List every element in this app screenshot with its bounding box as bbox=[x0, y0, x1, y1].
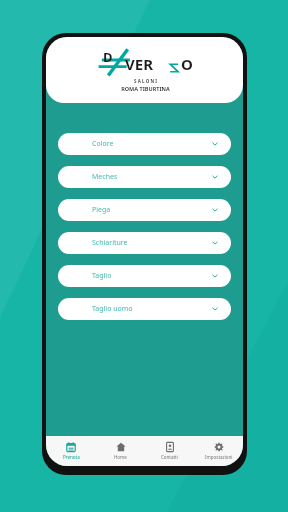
staticText: Schiariture bbox=[92, 238, 128, 248]
staticText: Colore bbox=[92, 139, 114, 149]
button[interactable]: Contatti bbox=[145, 436, 194, 466]
button[interactable]: Taglio uomo bbox=[58, 298, 231, 320]
staticText: Taglio uomo bbox=[92, 304, 133, 314]
staticText: Contatti bbox=[161, 454, 178, 460]
staticText: Meches bbox=[92, 172, 118, 182]
staticText: Piega bbox=[92, 205, 111, 215]
button[interactable]: Schiariture bbox=[58, 232, 231, 254]
button[interactable]: Prenota bbox=[46, 436, 96, 466]
staticText: Taglio bbox=[92, 271, 112, 281]
staticText: S A L O N I bbox=[134, 78, 157, 84]
staticText: Prenota bbox=[63, 454, 80, 460]
staticText: D bbox=[103, 48, 113, 66]
staticText: Home bbox=[114, 454, 127, 460]
button[interactable]: Piega bbox=[58, 199, 231, 221]
button[interactable]: Home bbox=[96, 436, 145, 466]
staticText: ROMA TIBURTINA bbox=[121, 85, 170, 92]
button[interactable]: Meches bbox=[58, 166, 231, 188]
staticText: O bbox=[181, 54, 193, 74]
button[interactable]: Taglio bbox=[58, 265, 231, 287]
staticText: Impostazioni bbox=[205, 454, 233, 460]
button[interactable]: Colore bbox=[58, 133, 231, 155]
staticText: VER bbox=[125, 54, 153, 74]
button[interactable]: Impostazioni bbox=[194, 436, 243, 466]
